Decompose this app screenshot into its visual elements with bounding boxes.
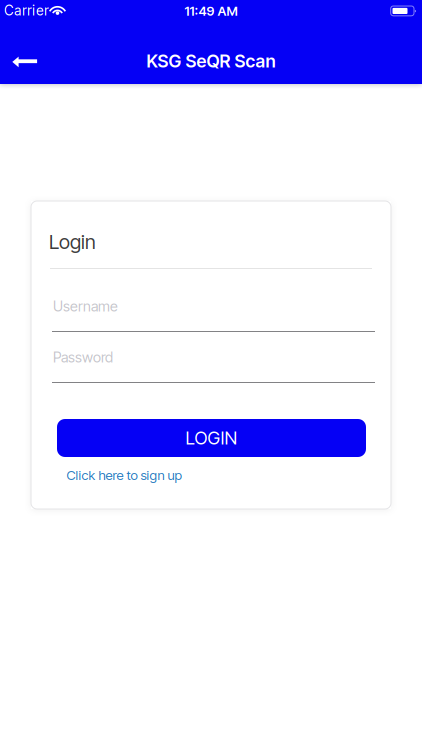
staticText: 11:49 AM [184,3,237,19]
button[interactable]: Back [0,52,47,73]
staticText: Carrier [4,2,48,19]
staticText: Login [49,230,96,254]
staticText: Password [53,348,113,366]
button[interactable]: LOGIN [57,419,366,457]
staticText: KSG SeQR Scan [146,50,275,72]
staticText: Username [53,297,118,315]
staticText: Click here to sign up [66,467,181,483]
button[interactable]: Click here to sign up [66,467,181,483]
staticText: LOGIN [185,427,237,449]
